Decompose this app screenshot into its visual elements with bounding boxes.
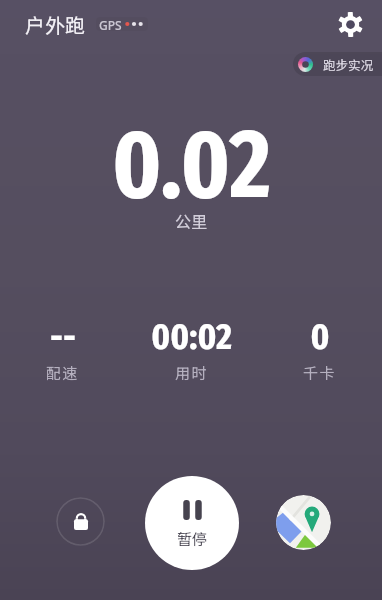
button[interactable]: Lock screen [56, 497, 105, 546]
button[interactable]: 跑步实况 [293, 52, 382, 76]
staticText: 千卡 [303, 362, 336, 384]
staticText: 用时 [175, 362, 208, 384]
staticText: 户外跑 [25, 10, 85, 39]
staticText: 配速 [46, 362, 79, 384]
staticText: 跑步实况 [323, 55, 374, 73]
staticText: 公里 [175, 209, 208, 232]
button[interactable]: -- [46, 314, 79, 384]
staticText: -- [50, 314, 76, 358]
button[interactable]: Settings [327, 1, 373, 47]
staticText: 00:02 [151, 314, 232, 358]
button[interactable]: 暂停 [145, 476, 239, 570]
button[interactable]: GPS [96, 17, 148, 31]
staticText: 0.02 [112, 106, 271, 222]
button[interactable]: Map [276, 495, 331, 550]
button[interactable]: 0 [303, 314, 336, 384]
button[interactable]: 00:02 [151, 314, 232, 384]
staticText: GPS [99, 17, 122, 31]
staticText: 暂停 [177, 528, 208, 550]
staticText: 0 [310, 314, 330, 358]
